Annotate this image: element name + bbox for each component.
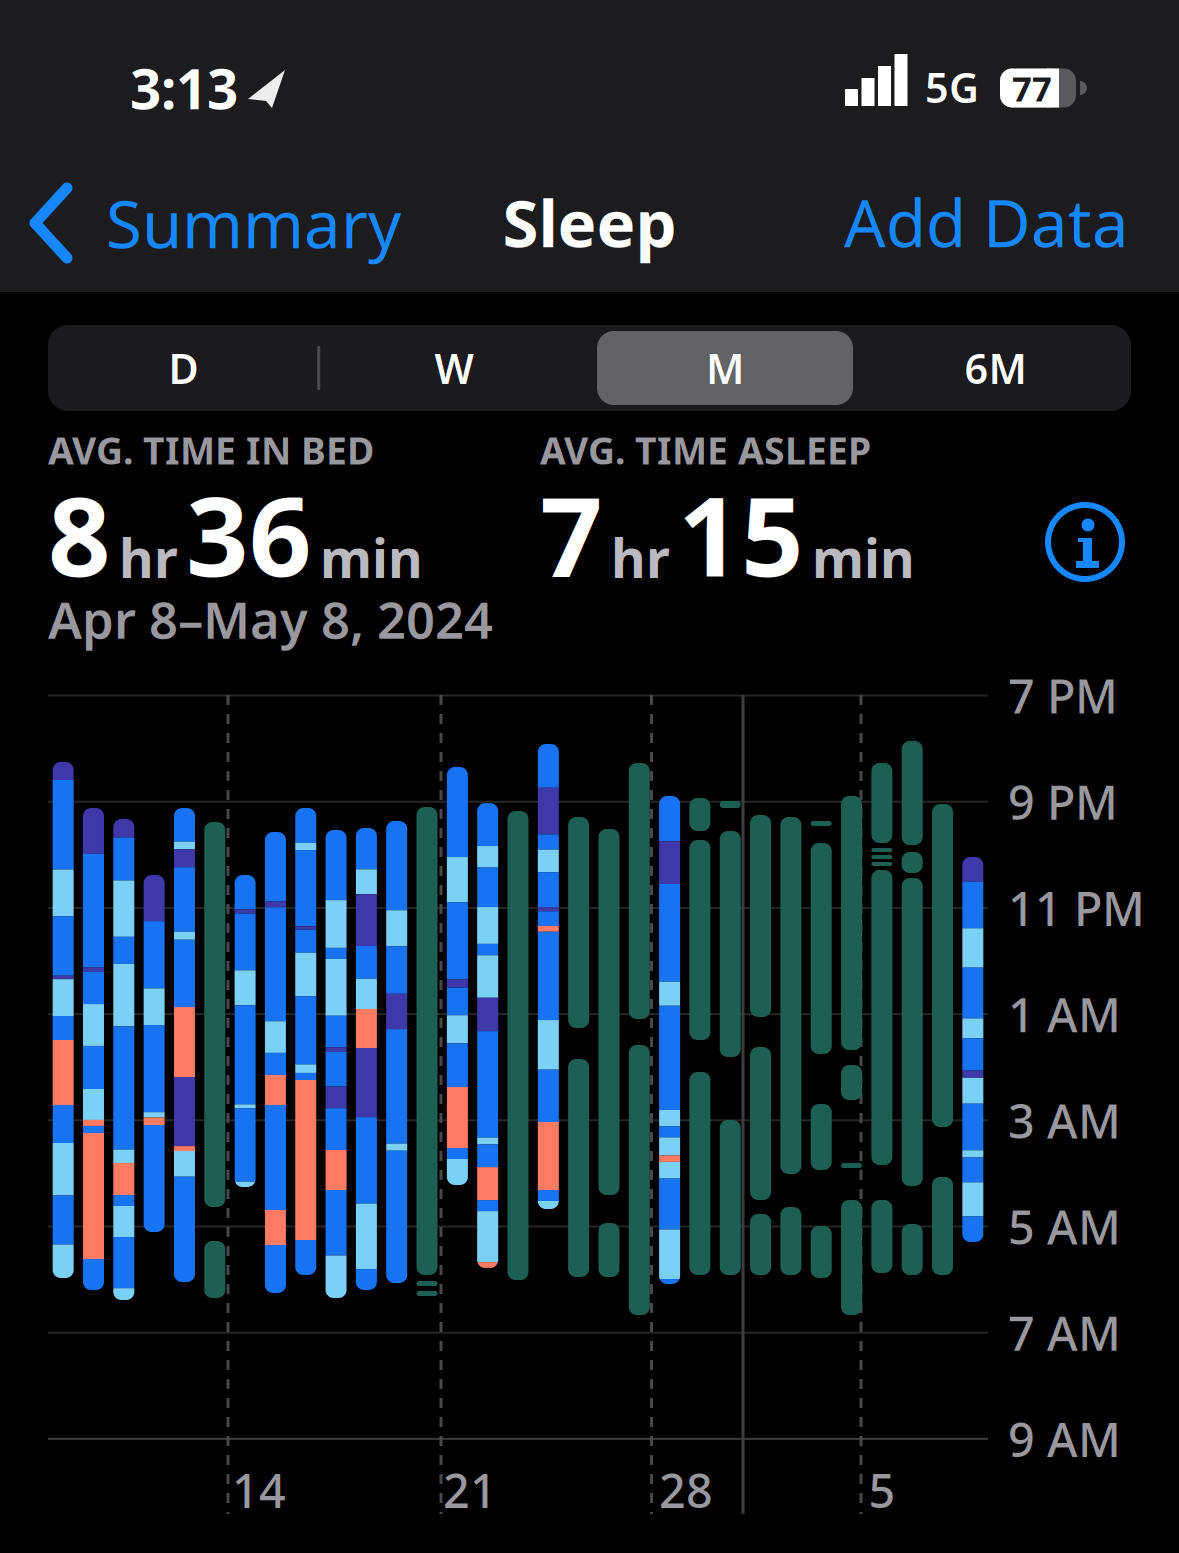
staticText: 14 [232, 1459, 286, 1521]
staticText: Apr 8–May 8, 2024 [48, 585, 493, 653]
staticText: AVG. TIME IN BED [48, 425, 374, 475]
staticText: D [168, 341, 198, 395]
staticText: Summary [106, 180, 401, 266]
staticText: 3:13 [130, 52, 238, 124]
staticText: 7 PM [1008, 664, 1118, 726]
staticText: 6M [965, 341, 1027, 395]
button[interactable] [1048, 505, 1122, 579]
staticText: 21 [443, 1459, 497, 1521]
button[interactable]: Summary [0, 180, 401, 266]
staticText: 5 [868, 1459, 895, 1521]
staticText: AVG. TIME ASLEEP [540, 425, 871, 475]
staticText: min [320, 522, 423, 593]
staticText: 77 [1012, 65, 1052, 111]
staticText: 5 AM [1008, 1195, 1121, 1257]
staticText: 28 [659, 1459, 713, 1521]
button[interactable]: M [595, 328, 855, 408]
staticText: W [435, 341, 474, 395]
staticText: 1 AM [1008, 983, 1121, 1045]
staticText: 3 AM [1008, 1089, 1121, 1151]
button[interactable]: 6M [866, 328, 1126, 408]
staticText: hr [119, 522, 178, 593]
staticText: 36 [186, 461, 312, 607]
staticText: 5G [925, 60, 979, 114]
staticText: 9 AM [1008, 1408, 1121, 1470]
staticText: 15 [678, 461, 804, 607]
staticText: 9 PM [1008, 771, 1118, 833]
staticText: Add Data [844, 179, 1129, 265]
staticText: min [812, 522, 915, 593]
staticText: 11 PM [1008, 877, 1145, 939]
button[interactable]: W [324, 328, 584, 408]
button[interactable]: Add Data [844, 179, 1179, 265]
button[interactable]: D [53, 328, 313, 408]
staticText: 7 [540, 461, 603, 607]
staticText: 7 AM [1008, 1302, 1121, 1364]
staticText: hr [611, 522, 670, 593]
staticText: 8 [48, 461, 111, 607]
staticText: Sleep [502, 179, 676, 265]
staticText: M [706, 341, 744, 395]
